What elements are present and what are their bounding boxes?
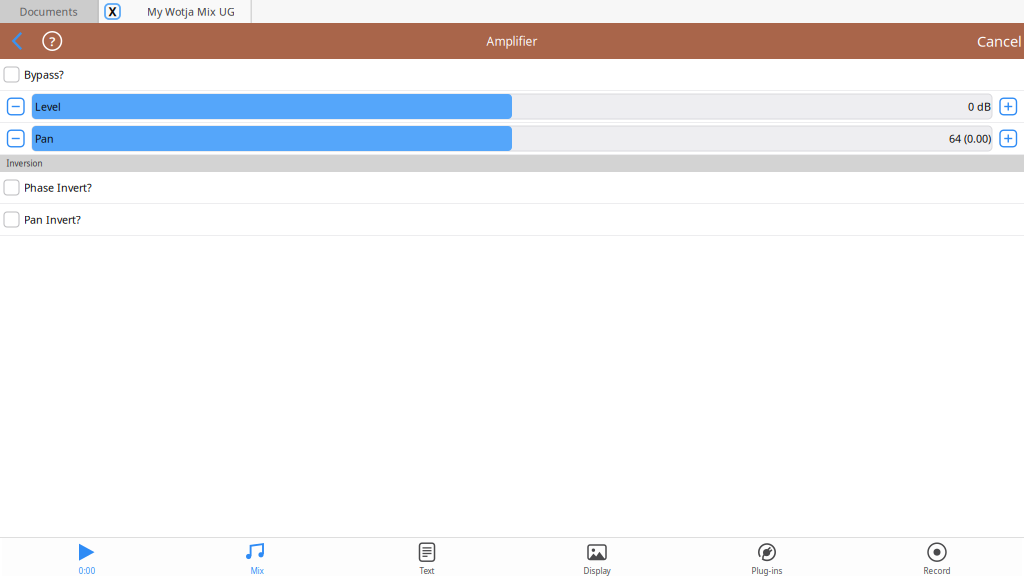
button[interactable]: Plug-ins bbox=[682, 538, 852, 576]
button[interactable]: Increase Level bbox=[992, 91, 1023, 122]
button[interactable]: Display bbox=[512, 538, 682, 576]
staticText: 0:00 bbox=[78, 566, 95, 576]
button[interactable]: Help bbox=[43, 23, 73, 59]
button[interactable]: Decrease Level bbox=[0, 91, 32, 122]
staticText: Pan Invert? bbox=[24, 212, 81, 227]
button[interactable]: Decrease Pan bbox=[0, 123, 32, 154]
button[interactable]: Pan Invert? bbox=[0, 204, 1024, 236]
staticText: Phase Invert? bbox=[24, 180, 92, 195]
button[interactable]: Record bbox=[852, 538, 1022, 576]
button[interactable]: Text bbox=[342, 538, 512, 576]
staticText: 0 dB bbox=[968, 99, 991, 114]
button[interactable]: Bypass? bbox=[0, 59, 1024, 91]
staticText: 64 (0.00) bbox=[949, 131, 991, 146]
staticText: Cancel bbox=[977, 31, 1022, 51]
button[interactable]: Phase Invert? bbox=[0, 172, 1024, 204]
staticText: My Wotja Mix UG bbox=[147, 4, 235, 19]
staticText: Inversion bbox=[6, 158, 42, 169]
staticText: Text bbox=[419, 566, 434, 576]
button[interactable]: Documents bbox=[0, 0, 97, 23]
button[interactable]: 0:00 bbox=[2, 538, 172, 576]
staticText: Mix bbox=[250, 566, 263, 576]
staticText: Amplifier bbox=[486, 33, 537, 49]
staticText: Bypass? bbox=[24, 67, 64, 82]
staticText: X bbox=[108, 3, 116, 19]
staticText: Display bbox=[583, 566, 610, 576]
staticText: ? bbox=[49, 32, 55, 50]
staticText: Record bbox=[923, 566, 950, 576]
staticText: Level bbox=[35, 99, 61, 114]
button[interactable]: Increase Pan bbox=[992, 123, 1023, 154]
staticText: Plug-ins bbox=[751, 566, 782, 576]
button[interactable]: Cancel bbox=[977, 23, 1024, 59]
staticText: Documents bbox=[19, 4, 77, 19]
button[interactable]: Mix bbox=[172, 538, 342, 576]
button[interactable]: X bbox=[99, 0, 250, 23]
button[interactable]: Back bbox=[0, 23, 43, 59]
staticText: Pan bbox=[35, 131, 54, 146]
